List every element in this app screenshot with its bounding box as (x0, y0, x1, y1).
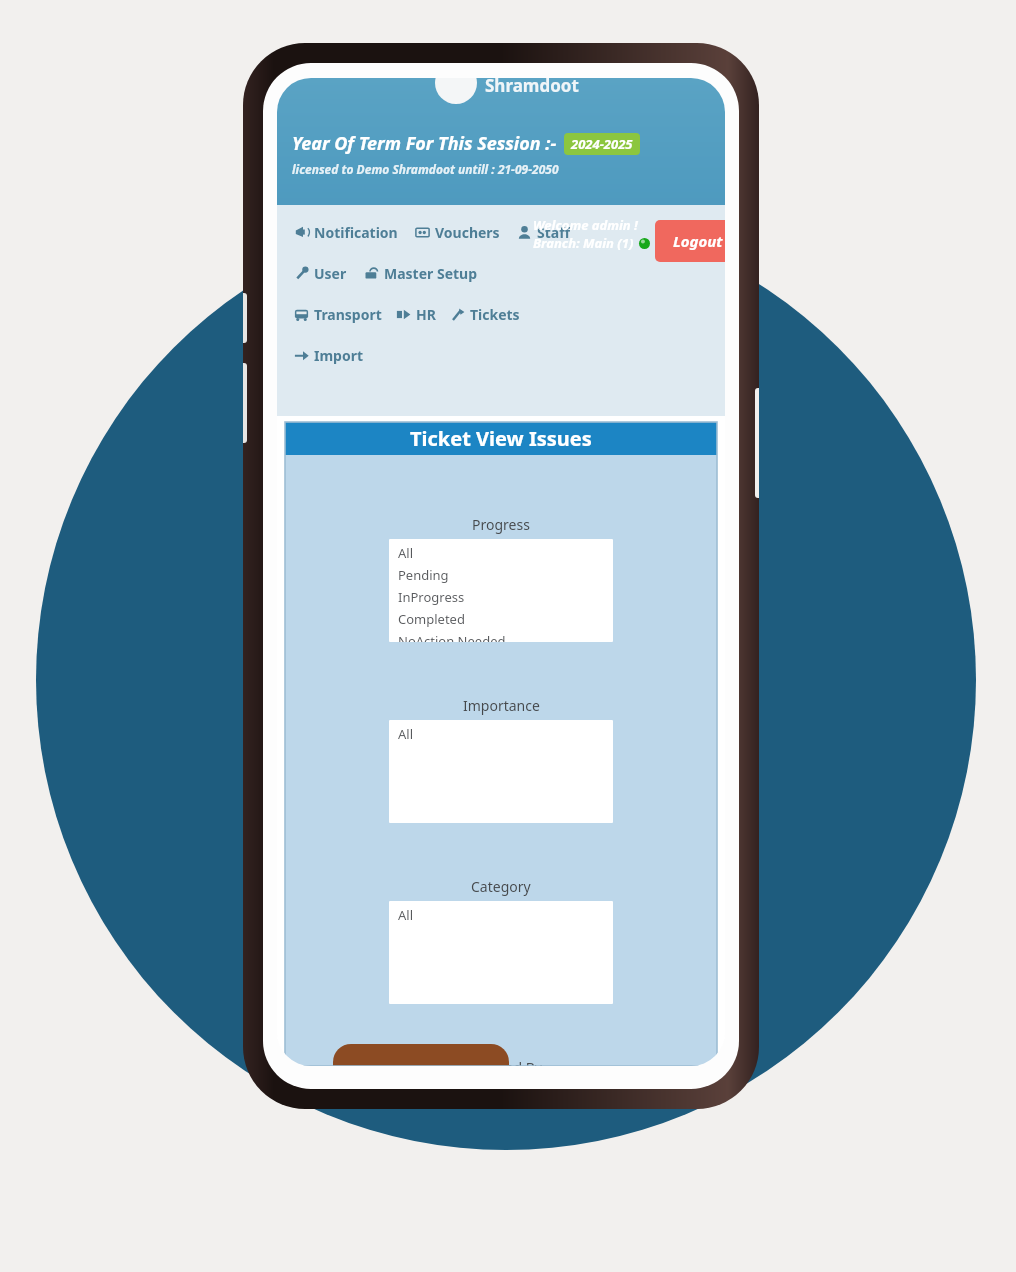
button[interactable]: Logout (655, 220, 725, 262)
button[interactable]: Vouchers (413, 221, 502, 244)
staticText: 2024-2025 (571, 135, 633, 153)
staticText: User (314, 264, 347, 283)
staticText: licensed to Demo Shramdoot untill : 21-0… (292, 161, 559, 177)
button[interactable]: Chat support (333, 1044, 509, 1066)
button[interactable]: All (389, 720, 613, 823)
staticText: Vouchers (435, 223, 500, 242)
staticText: Pending (398, 566, 449, 584)
staticText: Logout (673, 231, 723, 251)
staticText: Master Setup (384, 264, 478, 283)
staticText: Tickets (470, 305, 520, 324)
staticText: Reported By (461, 1058, 542, 1066)
staticText: NoAction Needed (398, 632, 506, 642)
staticText: Importance (463, 696, 540, 715)
button[interactable]: Notification (292, 221, 400, 244)
button[interactable]: Import (292, 344, 366, 367)
staticText: Notification (314, 223, 398, 242)
button[interactable]: All (389, 539, 613, 642)
staticText: Progress (472, 515, 530, 534)
staticText: Import (314, 346, 364, 365)
staticText: InProgress (398, 588, 465, 606)
staticText: Category (471, 877, 531, 896)
button[interactable]: User (292, 262, 349, 285)
staticText: Transport (314, 305, 382, 324)
staticText: Ticket View Issues (410, 425, 592, 452)
button[interactable]: Transport (292, 303, 384, 326)
staticText: Branch: Main (1) (533, 234, 634, 252)
staticText: Year Of Term For This Session :- (292, 131, 557, 156)
staticText: HR (416, 305, 436, 324)
staticText: All (398, 544, 414, 562)
staticText: Shramdoot (485, 78, 579, 97)
button[interactable]: HR (394, 303, 438, 326)
button[interactable]: All (389, 901, 613, 1004)
staticText: Staff (537, 223, 570, 242)
button[interactable]: Staff (515, 221, 572, 244)
staticText: Completed (398, 610, 465, 628)
staticText: Welcome admin ! (533, 216, 638, 234)
button[interactable]: Tickets (448, 303, 522, 326)
staticText: All (398, 725, 414, 743)
button[interactable]: Master Setup (362, 262, 480, 285)
staticText: All (398, 906, 414, 924)
